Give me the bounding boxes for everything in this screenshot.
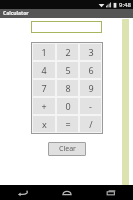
staticText: Calculator bbox=[3, 10, 29, 17]
staticText: 9 bbox=[88, 82, 94, 94]
staticText: 8 bbox=[65, 82, 71, 94]
button[interactable]: 6 bbox=[80, 62, 101, 78]
staticText: 0 bbox=[65, 100, 71, 112]
button[interactable]: + bbox=[33, 98, 55, 114]
button[interactable]: Recents bbox=[89, 185, 133, 200]
staticText: 7 bbox=[41, 82, 47, 94]
button[interactable]: Back bbox=[0, 185, 45, 200]
button[interactable]: = bbox=[57, 116, 78, 132]
staticText: 2 bbox=[65, 46, 71, 58]
button[interactable]: Home bbox=[45, 185, 89, 200]
staticText: - bbox=[89, 100, 92, 112]
staticText: / bbox=[89, 118, 93, 130]
staticText: 5 bbox=[65, 64, 71, 76]
staticText: 1 bbox=[41, 46, 47, 58]
button[interactable]: - bbox=[80, 98, 101, 114]
button[interactable]: 5 bbox=[57, 62, 78, 78]
button[interactable]: 4 bbox=[33, 62, 55, 78]
button[interactable]: 7 bbox=[33, 80, 55, 96]
staticText: x bbox=[42, 118, 47, 130]
button[interactable]: 3 bbox=[80, 44, 101, 60]
button[interactable]: 9 bbox=[80, 80, 101, 96]
button[interactable]: 0 bbox=[57, 98, 78, 114]
button[interactable]: Clear bbox=[48, 142, 86, 156]
staticText: 4 bbox=[41, 64, 47, 76]
button[interactable]: / bbox=[80, 116, 101, 132]
button[interactable] bbox=[31, 21, 102, 33]
staticText: 9:48 bbox=[119, 1, 131, 9]
staticText: Clear bbox=[59, 144, 76, 154]
button[interactable]: x bbox=[33, 116, 55, 132]
staticText: = bbox=[65, 118, 71, 130]
staticText: 6 bbox=[88, 64, 94, 76]
button[interactable]: 1 bbox=[33, 44, 55, 60]
button[interactable]: 2 bbox=[57, 44, 78, 60]
staticText: + bbox=[41, 100, 47, 112]
button[interactable]: 8 bbox=[57, 80, 78, 96]
staticText: 3 bbox=[88, 46, 94, 58]
